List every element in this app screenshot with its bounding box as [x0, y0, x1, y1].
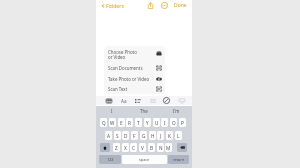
staticText: P	[181, 120, 184, 126]
button[interactable]: D	[122, 131, 129, 140]
staticText: A	[107, 133, 110, 139]
button[interactable]: More options	[160, 1, 169, 10]
staticText: F	[133, 133, 136, 139]
staticText: N	[159, 145, 163, 151]
button[interactable]: S	[114, 131, 121, 140]
staticText: Folders	[106, 2, 124, 9]
button[interactable]: I	[161, 118, 168, 127]
button[interactable]: Z	[113, 143, 120, 152]
button[interactable]: Q	[100, 118, 107, 127]
staticText: Q	[102, 120, 106, 126]
button[interactable]: Shift	[100, 143, 110, 152]
staticText: U	[155, 120, 159, 126]
button[interactable]: T	[135, 118, 142, 127]
button[interactable]: The	[128, 106, 160, 116]
button[interactable]: Table	[104, 96, 113, 105]
button[interactable]: C	[130, 143, 137, 152]
button[interactable]: A	[105, 131, 112, 140]
button[interactable]: W	[109, 118, 116, 127]
button[interactable]: Scan Documents	[104, 62, 165, 73]
staticText: M	[166, 145, 171, 151]
staticText: S	[116, 133, 119, 139]
button[interactable]: Choose Photo or Video	[104, 46, 165, 62]
staticText: Aa	[121, 98, 127, 104]
button[interactable]: Scan Text	[104, 84, 165, 94]
staticText: I	[164, 120, 166, 126]
button[interactable]: Text format	[119, 96, 128, 105]
staticText: Done	[174, 2, 187, 9]
button[interactable]: V	[139, 143, 146, 152]
staticText: O	[172, 120, 176, 126]
button[interactable]: F	[131, 131, 138, 140]
staticText: K	[168, 133, 171, 139]
staticText: H	[151, 133, 155, 139]
button[interactable]: R	[126, 118, 133, 127]
button[interactable]: P	[179, 118, 186, 127]
staticText: T	[137, 120, 140, 126]
button[interactable]: M	[165, 143, 172, 152]
button[interactable]: Markup	[162, 96, 171, 105]
button[interactable]: J	[157, 131, 164, 140]
button[interactable]: G	[140, 131, 147, 140]
button[interactable]: X	[122, 143, 129, 152]
staticText: The	[140, 108, 148, 114]
button[interactable]: Checklist	[133, 96, 142, 105]
button[interactable]: Y	[144, 118, 151, 127]
button[interactable]: N	[157, 143, 164, 152]
button[interactable]: space	[122, 155, 167, 164]
staticText: L	[177, 133, 180, 139]
staticText: X	[124, 145, 127, 151]
staticText: C	[132, 145, 135, 151]
staticText: I'm	[173, 108, 180, 114]
staticText: I	[111, 108, 113, 114]
button[interactable]: Take Photo or Video	[104, 73, 165, 84]
button[interactable]: Delete	[177, 143, 187, 152]
button[interactable]: K	[166, 131, 173, 140]
staticText: W	[110, 120, 115, 126]
button[interactable]: H	[149, 131, 156, 140]
button[interactable]: 123	[99, 155, 121, 164]
button[interactable]: return	[168, 155, 189, 164]
staticText: V	[141, 145, 144, 151]
staticText: R	[128, 120, 131, 126]
button[interactable]: L	[175, 131, 182, 140]
button[interactable]: B	[148, 143, 155, 152]
staticText: J	[160, 133, 162, 139]
button[interactable]: Folders	[100, 0, 125, 11]
staticText: G	[142, 133, 146, 139]
button[interactable]: E	[118, 118, 125, 127]
staticText: D	[124, 133, 128, 139]
button[interactable]: Hide keyboard	[177, 96, 186, 105]
staticText: Z	[115, 145, 118, 151]
button[interactable]: Share	[146, 1, 155, 10]
staticText: space	[139, 157, 150, 162]
staticText: Scan Text	[108, 86, 128, 92]
button[interactable]: Attachments	[148, 96, 157, 105]
staticText: Choose Photo or Video	[108, 49, 137, 60]
button[interactable]: U	[153, 118, 160, 127]
staticText: 123	[107, 157, 114, 162]
staticText: Y	[146, 120, 149, 126]
button[interactable]: Done	[173, 0, 188, 11]
button[interactable]: O	[170, 118, 177, 127]
staticText: Take Photo or Video	[108, 76, 150, 82]
staticText: B	[150, 145, 154, 151]
button[interactable]: I	[96, 106, 128, 116]
button[interactable]: I'm	[160, 106, 192, 116]
staticText: E	[120, 120, 123, 126]
staticText: return	[173, 157, 185, 162]
staticText: Scan Documents	[108, 65, 143, 71]
